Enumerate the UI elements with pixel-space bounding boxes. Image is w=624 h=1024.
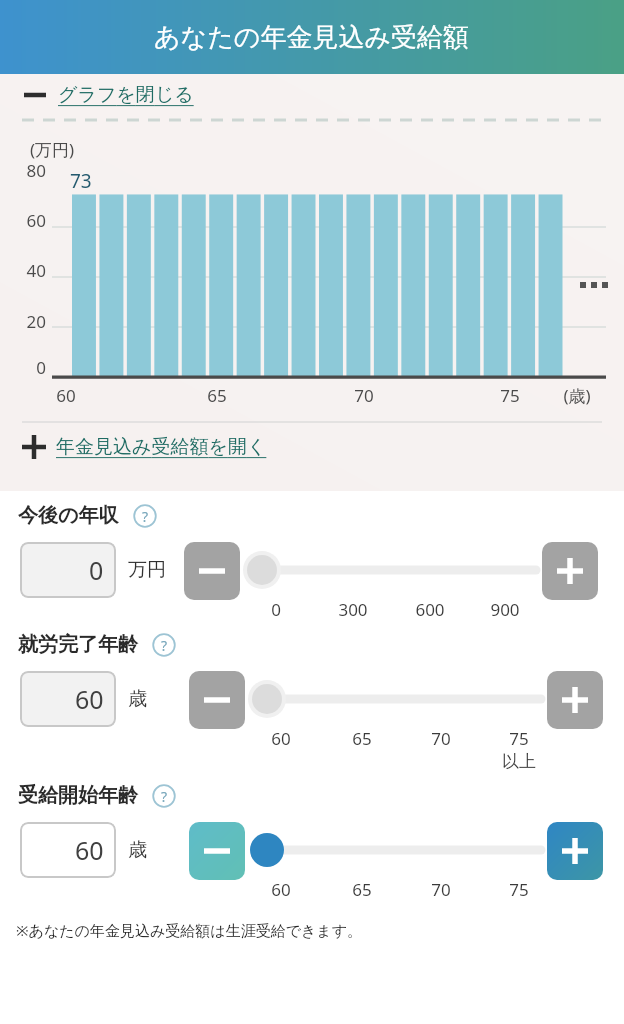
button[interactable]: 増やす xyxy=(542,542,598,600)
staticText: あなたの年金見込み受給額 xyxy=(154,21,470,54)
staticText: 40 xyxy=(2,259,46,282)
staticText: 65 xyxy=(340,727,384,750)
button[interactable]: 減らす xyxy=(189,671,245,729)
staticText: ? xyxy=(142,507,149,526)
staticText: 75 xyxy=(497,878,541,901)
staticText: 80 xyxy=(2,159,46,182)
staticText: 受給開始年齢 xyxy=(18,783,138,808)
staticText: 70 xyxy=(419,727,463,750)
staticText: ? xyxy=(161,636,168,655)
button[interactable]: 0 xyxy=(20,542,116,598)
staticText: 60 xyxy=(259,878,303,901)
staticText: 歳 xyxy=(128,838,147,862)
staticText: 65 xyxy=(340,878,384,901)
button[interactable]: ヘルプ xyxy=(152,633,176,657)
staticText: 60 xyxy=(2,209,46,232)
button[interactable]: 60 xyxy=(20,671,116,727)
staticText: 20 xyxy=(2,310,46,333)
staticText: 60 xyxy=(75,682,104,716)
staticText: ? xyxy=(161,787,168,806)
staticText: 年金見込み受給額を開く xyxy=(56,435,267,459)
staticText: 60 xyxy=(75,833,104,867)
button[interactable]: 60 xyxy=(20,822,116,878)
button[interactable]: スライダー xyxy=(245,822,547,878)
staticText: 900 xyxy=(483,598,527,621)
button[interactable]: 減らす xyxy=(184,542,240,600)
staticText: 70 xyxy=(341,384,387,407)
staticText: 0 xyxy=(89,553,104,587)
staticText: ※あなたの年金見込み受給額は生涯受給できます。 xyxy=(16,920,363,940)
button[interactable]: 増やす xyxy=(547,671,603,729)
button[interactable]: グラフを閉じる xyxy=(0,74,624,116)
button[interactable]: スライダー xyxy=(245,671,547,727)
staticText: 以上 xyxy=(497,751,541,772)
staticText: 70 xyxy=(419,878,463,901)
staticText: 万円 xyxy=(128,558,166,582)
staticText: 73 xyxy=(70,168,92,194)
button[interactable]: 年金見込み受給額を開く xyxy=(0,424,624,470)
button[interactable]: 増やす xyxy=(547,822,603,880)
staticText: 今後の年収 xyxy=(18,503,119,528)
staticText: 300 xyxy=(331,598,375,621)
button[interactable]: ヘルプ xyxy=(133,504,157,528)
staticText: 65 xyxy=(194,384,240,407)
staticText: グラフを閉じる xyxy=(58,83,194,107)
staticText: 60 xyxy=(259,727,303,750)
staticText: 歳 xyxy=(128,687,147,711)
staticText: 600 xyxy=(408,598,452,621)
button[interactable]: ヘルプ xyxy=(152,784,176,808)
staticText: (歳) xyxy=(554,384,600,407)
staticText: 60 xyxy=(43,384,89,407)
staticText: 75 xyxy=(497,727,541,750)
staticText: (万円) xyxy=(30,138,75,161)
staticText: 0 xyxy=(254,598,298,621)
button[interactable]: 減らす xyxy=(189,822,245,880)
staticText: 75 xyxy=(487,384,533,407)
button[interactable]: スライダー xyxy=(240,542,542,598)
staticText: 就労完了年齢 xyxy=(18,632,138,657)
staticText: 0 xyxy=(2,356,46,379)
